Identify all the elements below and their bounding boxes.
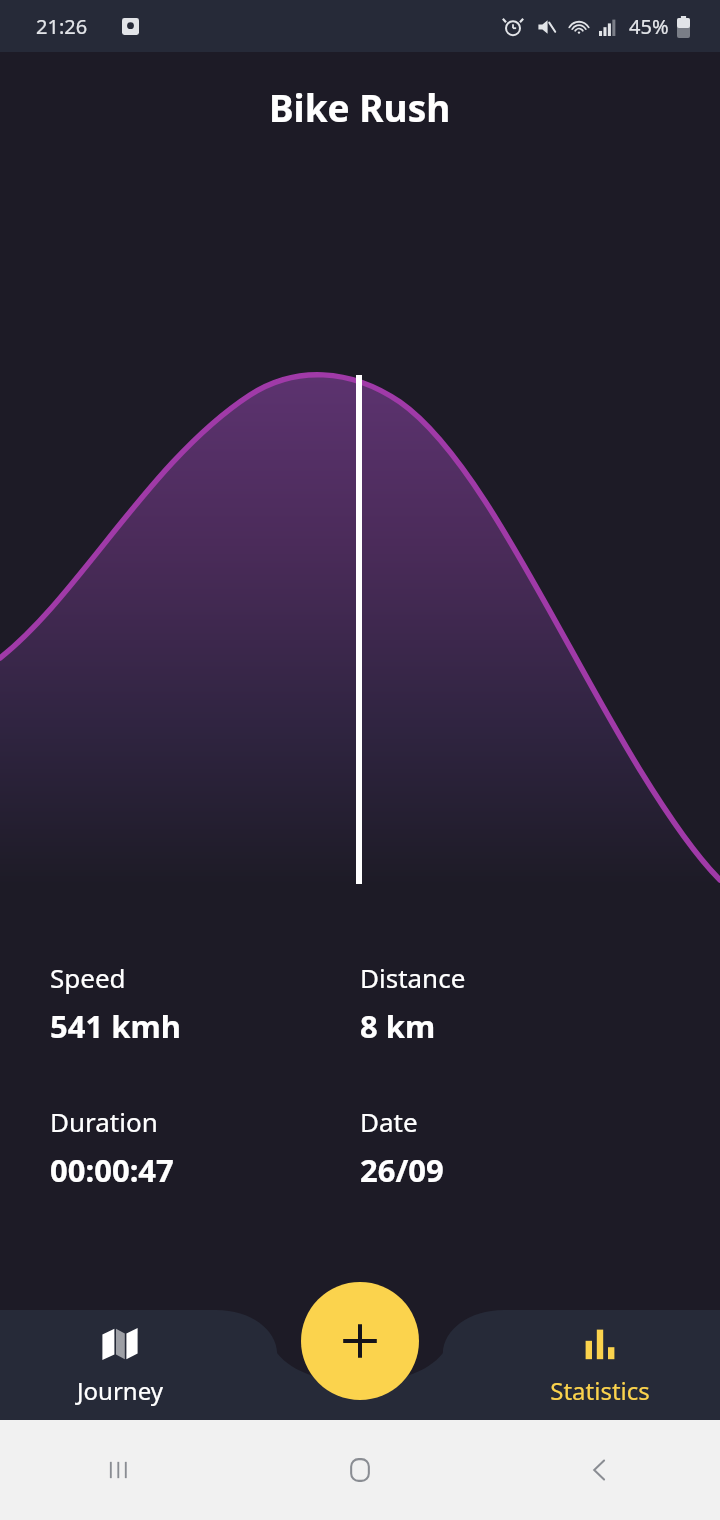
- staticText: Journey: [77, 1374, 163, 1407]
- staticText: 541 kmh: [50, 1005, 181, 1047]
- button[interactable]: Back: [583, 1453, 617, 1487]
- button[interactable]: Journey: [0, 1316, 240, 1415]
- button[interactable]: Recent apps: [103, 1453, 137, 1487]
- staticText: Date: [360, 1104, 418, 1139]
- staticText: 8 km: [360, 1005, 436, 1047]
- staticText: Speed: [50, 960, 126, 995]
- staticText: 00:00:47: [50, 1149, 174, 1191]
- staticText: 26/09: [360, 1149, 444, 1191]
- staticText: 21:26: [36, 13, 88, 40]
- staticText: Duration: [50, 1104, 158, 1139]
- button[interactable]: Statistics: [480, 1316, 720, 1415]
- button[interactable]: Home: [343, 1453, 377, 1487]
- staticText: 45%: [629, 13, 669, 40]
- staticText: Bike Rush: [269, 82, 451, 132]
- button[interactable]: Add: [301, 1282, 419, 1400]
- staticText: Statistics: [550, 1374, 650, 1407]
- staticText: Distance: [360, 960, 466, 995]
